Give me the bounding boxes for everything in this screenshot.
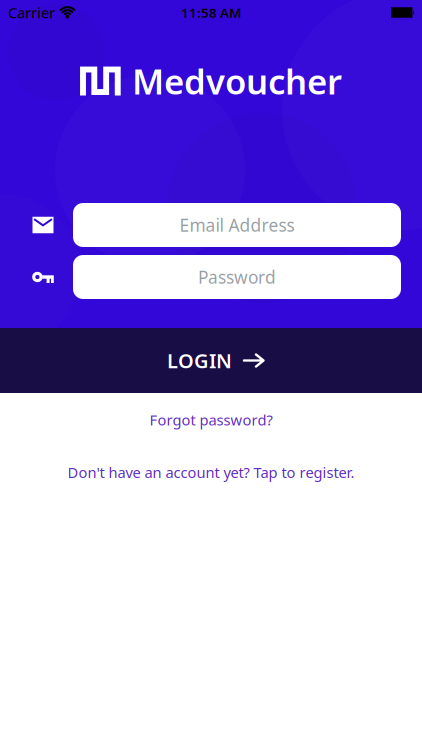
staticText: 11:58 AM [181, 4, 241, 21]
button[interactable]: Don't have an account yet? Tap to regist… [67, 462, 354, 482]
staticText: Forgot password? [149, 410, 272, 429]
staticText: LOGIN [167, 347, 232, 374]
staticText: Email Address [179, 213, 294, 236]
staticText: Password [198, 265, 276, 288]
staticText: Carrier [8, 3, 55, 22]
button[interactable]: Email Address [73, 203, 401, 247]
staticText: Don't have an account yet? Tap to regist… [67, 462, 354, 482]
staticText: Medvoucher [132, 58, 342, 104]
button[interactable]: LOGIN [0, 328, 422, 393]
button[interactable]: Forgot password? [149, 410, 272, 429]
button[interactable]: Password [73, 255, 401, 299]
